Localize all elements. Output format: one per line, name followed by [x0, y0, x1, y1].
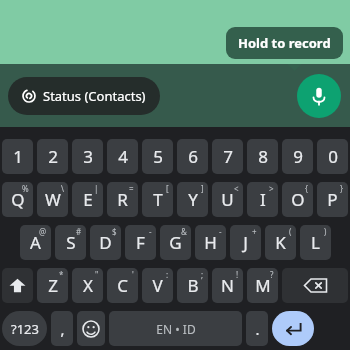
staticText: $	[112, 226, 117, 237]
staticText: H	[204, 231, 217, 254]
button[interactable]: 8	[247, 139, 278, 174]
button[interactable]: 5	[142, 139, 173, 174]
button[interactable]: O	[282, 182, 313, 217]
staticText: L	[311, 231, 320, 254]
staticText: |	[94, 183, 99, 194]
button[interactable]: .	[246, 311, 268, 346]
button[interactable]: W	[37, 182, 68, 217]
staticText: 9	[293, 145, 303, 168]
staticText: +	[252, 226, 257, 237]
staticText: !	[236, 269, 239, 280]
button[interactable]: G	[160, 225, 191, 260]
staticText: D	[99, 231, 112, 254]
button[interactable]: Status (Contacts)	[8, 77, 160, 115]
staticText: :	[166, 269, 169, 280]
staticText: B	[187, 274, 199, 297]
staticText: M	[255, 274, 271, 297]
button[interactable]: Backspace	[282, 268, 348, 303]
staticText: ,	[60, 319, 65, 339]
button[interactable]: Enter	[272, 311, 314, 346]
button[interactable]: T	[142, 182, 173, 217]
staticText: I	[260, 188, 266, 211]
staticText: @	[39, 226, 47, 237]
button[interactable]: 7	[212, 139, 243, 174]
staticText: F	[136, 231, 145, 254]
button[interactable]: Shift	[2, 268, 33, 303]
button[interactable]: E	[72, 182, 103, 217]
button[interactable]: ,	[51, 311, 73, 346]
staticText: =	[129, 183, 134, 194]
button[interactable]: N	[212, 268, 243, 303]
staticText: T	[153, 188, 163, 211]
button[interactable]: B	[177, 268, 208, 303]
button[interactable]: 2	[37, 139, 68, 174]
staticText: EN • ID	[156, 321, 196, 337]
button[interactable]: K	[265, 225, 296, 260]
button[interactable]: L	[300, 225, 331, 260]
staticText: .	[255, 319, 260, 339]
staticText: G	[169, 231, 182, 254]
button[interactable]: C	[107, 268, 138, 303]
button[interactable]: D	[90, 225, 121, 260]
staticText: X	[83, 274, 93, 297]
button[interactable]: Q	[2, 182, 33, 217]
button[interactable]: S	[55, 225, 86, 260]
staticText: 0	[328, 145, 338, 168]
staticText: -	[149, 226, 152, 237]
button[interactable]: H	[195, 225, 226, 260]
button[interactable]: Y	[177, 182, 208, 217]
staticText: 1	[13, 145, 23, 168]
button[interactable]: V	[142, 268, 173, 303]
staticText: Hold to record	[238, 34, 331, 52]
button[interactable]: 0	[317, 139, 348, 174]
staticText: W	[45, 188, 61, 211]
staticText: J	[243, 231, 248, 254]
staticText: S	[66, 231, 76, 254]
staticText: K	[275, 231, 286, 254]
staticText: *	[59, 269, 64, 280]
staticText: %	[22, 183, 29, 194]
button[interactable]: 9	[282, 139, 313, 174]
button[interactable]: M	[247, 268, 278, 303]
staticText: #	[76, 226, 82, 237]
staticText: Z	[48, 274, 58, 297]
button[interactable]: Hold to record	[297, 74, 341, 118]
button[interactable]: 3	[72, 139, 103, 174]
staticText: ]	[201, 183, 204, 194]
button[interactable]: P	[317, 182, 348, 217]
button[interactable]: EN • ID	[109, 311, 242, 346]
button[interactable]: U	[212, 182, 243, 217]
button[interactable]: 1	[2, 139, 33, 174]
staticText: 6	[188, 145, 198, 168]
staticText: 5	[153, 145, 163, 168]
button[interactable]: ?123	[2, 311, 47, 346]
staticText: 8	[258, 145, 268, 168]
button[interactable]: F	[125, 225, 156, 260]
staticText: "	[95, 269, 99, 280]
staticText: 4	[118, 145, 128, 168]
staticText: N	[221, 274, 234, 297]
button[interactable]: 6	[177, 139, 208, 174]
button[interactable]: R	[107, 182, 138, 217]
staticText: 2	[48, 145, 58, 168]
button[interactable]: I	[247, 182, 278, 217]
button[interactable]: Hold to record	[226, 27, 343, 59]
staticText: )	[324, 226, 327, 237]
staticText: ?123	[11, 320, 39, 338]
button[interactable]: Z	[37, 268, 68, 303]
button[interactable]: J	[230, 225, 261, 260]
staticText: 3	[83, 145, 93, 168]
staticText: Status (Contacts)	[43, 87, 146, 105]
staticText: \	[61, 183, 64, 194]
staticText: E	[83, 188, 93, 211]
staticText: }	[340, 183, 344, 194]
button[interactable]: X	[72, 268, 103, 303]
staticText: P	[327, 188, 338, 211]
staticText: &	[181, 226, 187, 237]
staticText: '	[132, 269, 134, 280]
button[interactable]: Emoji	[77, 311, 105, 346]
button[interactable]: A	[20, 225, 51, 260]
button[interactable]: 4	[107, 139, 138, 174]
staticText: O	[291, 188, 305, 211]
staticText: ?	[270, 269, 274, 280]
